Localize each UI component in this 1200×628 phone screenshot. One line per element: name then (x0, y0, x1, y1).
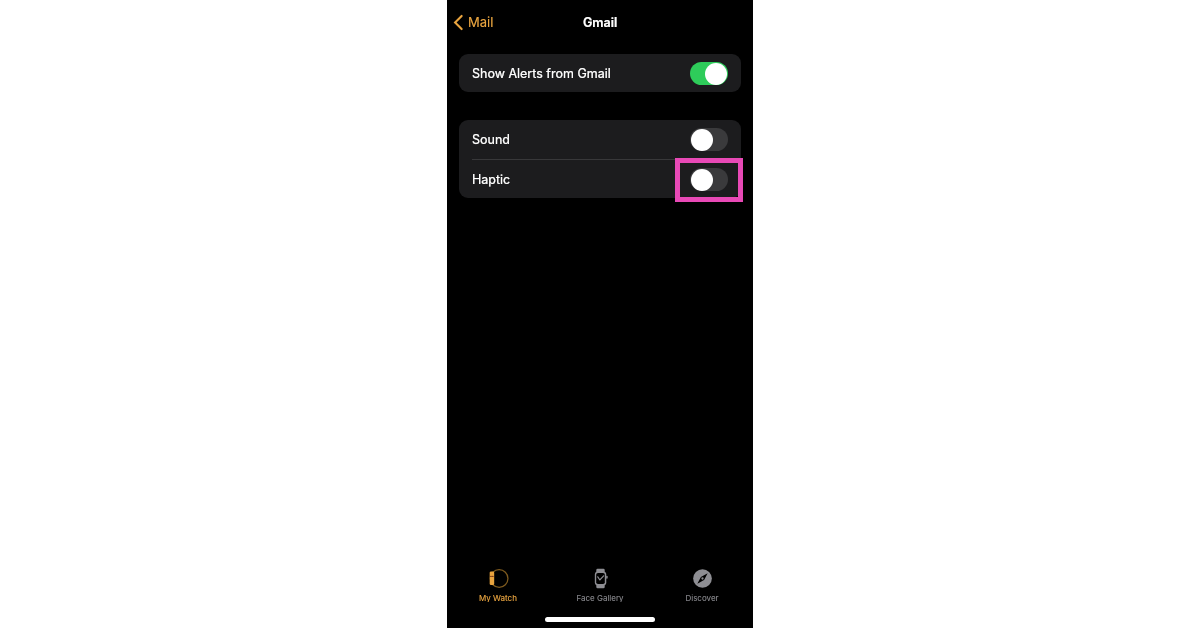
button[interactable]: My Watch (447, 568, 549, 602)
staticText: Haptic (472, 172, 511, 187)
button[interactable]: Show Alerts from Gmail (459, 54, 741, 92)
button[interactable]: Show Alerts from Gmail (690, 62, 728, 85)
staticText: My Watch (479, 593, 517, 602)
staticText: Face Gallery (576, 593, 624, 602)
button[interactable]: Haptic (690, 168, 728, 191)
staticText: Gmail (583, 15, 618, 30)
button[interactable]: Discover (651, 568, 753, 602)
staticText: Discover (685, 593, 719, 602)
staticText: Show Alerts from Gmail (472, 66, 611, 81)
button[interactable]: Face Gallery (549, 568, 651, 602)
button[interactable]: Back to Mail (451, 8, 497, 36)
button[interactable]: Sound (690, 128, 728, 151)
button[interactable]: Sound (459, 120, 741, 159)
staticText: Mail (468, 14, 494, 30)
staticText: Sound (472, 132, 510, 147)
button[interactable]: Haptic (459, 160, 741, 198)
